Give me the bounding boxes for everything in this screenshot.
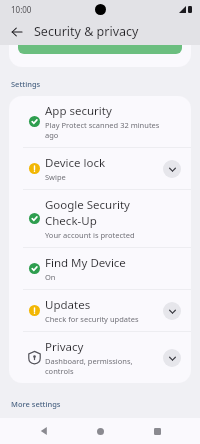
button[interactable]: Updates <box>9 290 191 331</box>
staticText: Swipe <box>45 172 66 182</box>
button[interactable]: Expand Privacy <box>163 349 181 367</box>
button[interactable]: Expand Updates <box>163 302 181 320</box>
staticText: 10:00 <box>11 4 32 15</box>
staticText: Privacy <box>45 339 84 355</box>
staticText: Find My Device <box>45 255 126 271</box>
staticText: Dashboard, permissions, controls <box>45 356 163 376</box>
staticText: Settings <box>11 79 41 89</box>
button[interactable]: Expand Device lock <box>163 160 181 178</box>
button[interactable]: App security <box>9 96 191 147</box>
staticText: Your account is protected <box>45 230 135 240</box>
button[interactable]: Privacy <box>9 332 191 383</box>
button[interactable]: Back <box>6 21 28 43</box>
button[interactable]: Back <box>31 418 57 444</box>
staticText: Updates <box>45 297 91 313</box>
button[interactable]: Home <box>87 418 113 444</box>
button[interactable]: Recent apps <box>144 418 170 444</box>
staticText: More settings <box>11 399 61 409</box>
staticText: App security <box>45 103 112 119</box>
staticText: Check for security updates <box>45 314 139 324</box>
staticText: Play Protect scanned 32 minutes ago <box>45 120 163 140</box>
staticText: On <box>45 272 56 282</box>
staticText: Device lock <box>45 155 106 171</box>
button[interactable]: Device lock <box>9 148 191 189</box>
staticText: Google Security Check-Up <box>45 197 163 229</box>
button[interactable]: Google Security Check-Up <box>9 190 191 247</box>
button[interactable] <box>9 45 191 67</box>
button[interactable]: Find My Device <box>9 248 191 289</box>
staticText: Security & privacy <box>34 23 139 40</box>
